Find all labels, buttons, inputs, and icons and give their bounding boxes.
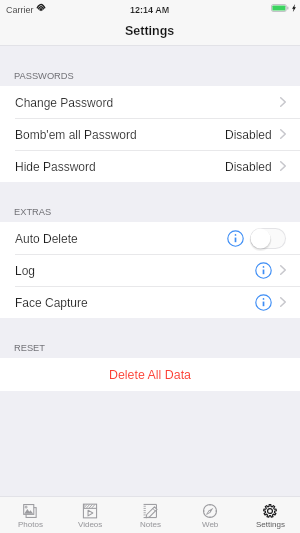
staticText: EXTRAS	[14, 207, 52, 217]
button[interactable]: Delete All Data	[0, 358, 300, 391]
button[interactable]: Info	[255, 294, 272, 311]
staticText: Carrier	[6, 5, 34, 15]
staticText: Settings	[256, 520, 285, 529]
button[interactable]: Auto Delete	[0, 222, 300, 254]
staticText: Videos	[78, 520, 103, 529]
staticText: Change Password	[15, 96, 114, 109]
staticText: RESET	[14, 343, 45, 353]
staticText: 12:14 AM	[130, 5, 170, 15]
button[interactable]: Face Capture	[0, 286, 300, 318]
button[interactable]: Change Password	[0, 86, 300, 118]
button[interactable]: Info	[255, 262, 272, 279]
button[interactable]: Log	[0, 254, 300, 286]
button[interactable]: Notes	[120, 497, 180, 533]
staticText: Photos	[18, 520, 43, 529]
staticText: Settings	[125, 24, 175, 38]
button[interactable]: Photos	[0, 497, 60, 533]
staticText: Face Capture	[15, 296, 88, 309]
staticText: Web	[202, 520, 219, 529]
button[interactable]: Hide Password	[0, 150, 300, 182]
button[interactable]: Settings	[240, 497, 300, 533]
staticText: Bomb'em all Password	[15, 128, 137, 141]
staticText: Log	[15, 264, 36, 277]
button[interactable]: Bomb'em all Password	[0, 118, 300, 150]
staticText: Disabled	[225, 160, 272, 173]
staticText: PASSWORDS	[14, 71, 74, 81]
staticText: Delete All Data	[109, 368, 191, 382]
button[interactable]: Auto Delete toggle	[250, 228, 286, 249]
staticText: Hide Password	[15, 160, 96, 173]
button[interactable]: Info	[227, 230, 244, 247]
staticText: Notes	[140, 520, 161, 529]
button[interactable]: Videos	[60, 497, 120, 533]
staticText: Disabled	[225, 128, 272, 141]
button[interactable]: Web	[180, 497, 240, 533]
staticText: Auto Delete	[15, 232, 78, 245]
